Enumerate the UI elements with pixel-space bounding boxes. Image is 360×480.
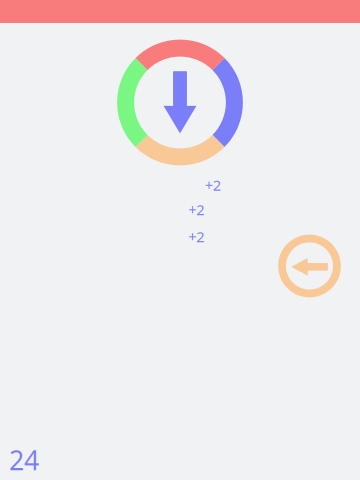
staticText: 24 xyxy=(9,442,39,478)
button[interactable]: Swipe down xyxy=(117,39,243,165)
staticText: +2 xyxy=(188,227,204,246)
staticText: +2 xyxy=(188,200,204,219)
button[interactable]: Undo xyxy=(278,235,341,297)
staticText: +2 xyxy=(205,175,221,195)
